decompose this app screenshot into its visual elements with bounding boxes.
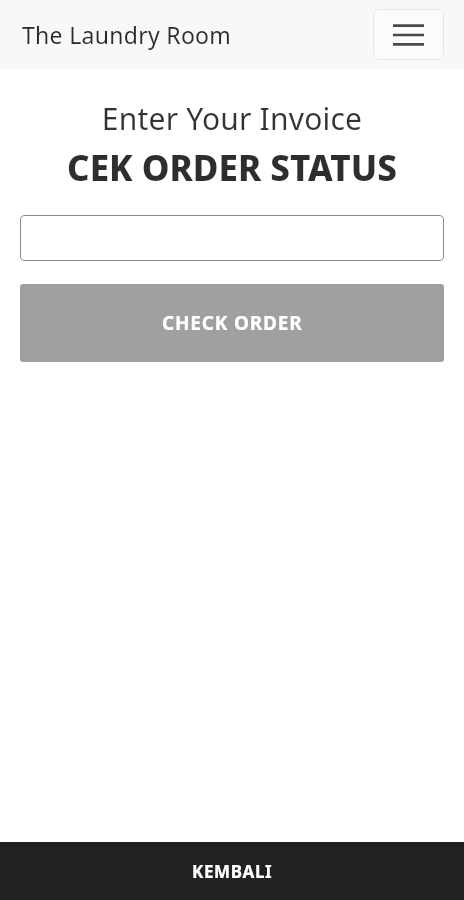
- staticText: The Laundry Room: [22, 19, 232, 50]
- button[interactable]: Invoice number input: [20, 215, 444, 261]
- button[interactable]: CHECK ORDER: [20, 284, 444, 362]
- staticText: CHECK ORDER: [162, 310, 303, 336]
- staticText: KEMBALI: [192, 860, 273, 883]
- button[interactable]: KEMBALI: [0, 842, 464, 900]
- staticText: CEK ORDER STATUS: [0, 144, 464, 192]
- button[interactable]: Open menu: [373, 9, 444, 60]
- staticText: Enter Your Invoice: [0, 98, 464, 139]
